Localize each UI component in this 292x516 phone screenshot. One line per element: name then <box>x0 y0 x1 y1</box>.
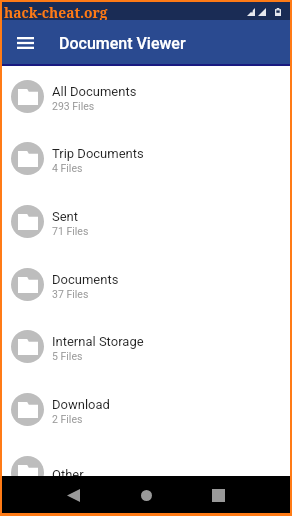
staticText: Other <box>52 467 84 476</box>
staticText: 2 Files <box>52 413 83 425</box>
staticText: 71 Files <box>52 225 89 237</box>
button[interactable]: Open navigation drawer <box>9 26 42 59</box>
button[interactable]: Back <box>59 481 87 509</box>
button[interactable]: Internal Storage <box>2 315 290 377</box>
button[interactable]: Documents <box>2 253 290 315</box>
staticText: 4 Files <box>52 162 83 174</box>
button[interactable]: Other <box>2 441 290 476</box>
staticText: hack-cheat.org <box>4 3 108 21</box>
button[interactable]: Download <box>2 378 290 440</box>
staticText: Internal Storage <box>52 334 144 349</box>
staticText: Documents <box>52 272 119 287</box>
staticText: Document Viewer <box>59 34 186 53</box>
staticText: 5 Files <box>52 350 83 362</box>
button[interactable]: All Documents <box>2 66 290 127</box>
button[interactable]: Sent <box>2 190 290 252</box>
button[interactable]: Recent apps <box>204 481 232 509</box>
staticText: Sent <box>52 209 79 224</box>
button[interactable]: Trip Documents <box>2 127 290 189</box>
button[interactable]: Home <box>132 481 160 509</box>
staticText: All Documents <box>52 84 137 99</box>
staticText: 293 Files <box>52 100 95 112</box>
staticText: Trip Documents <box>52 146 144 161</box>
staticText: 37 Files <box>52 288 89 300</box>
staticText: Download <box>52 397 110 412</box>
